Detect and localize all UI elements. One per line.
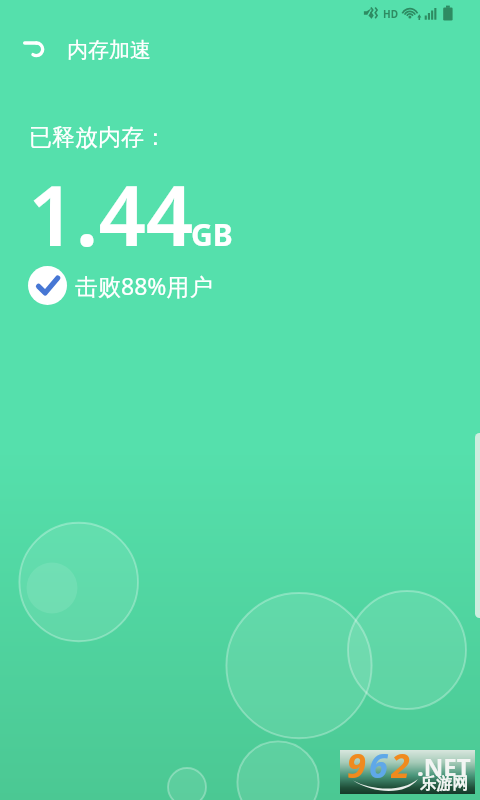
staticText: .NET <box>417 750 471 783</box>
button[interactable]: Back <box>6 28 50 72</box>
staticText: 1.44 <box>28 157 194 270</box>
staticText: 2 <box>391 742 413 786</box>
staticText: 6 <box>369 742 391 786</box>
staticText: HD <box>383 7 398 21</box>
staticText: 9 <box>347 742 369 786</box>
button[interactable]: 击败88%用户 <box>26 264 213 307</box>
staticText: 内存加速 <box>67 37 151 63</box>
staticText: 击败88%用户 <box>75 270 213 301</box>
staticText: GB <box>191 214 233 255</box>
button[interactable]: 内存加速 <box>58 28 161 72</box>
staticText: 已释放内存： <box>29 123 167 152</box>
staticText: 乐游网 <box>420 774 468 794</box>
